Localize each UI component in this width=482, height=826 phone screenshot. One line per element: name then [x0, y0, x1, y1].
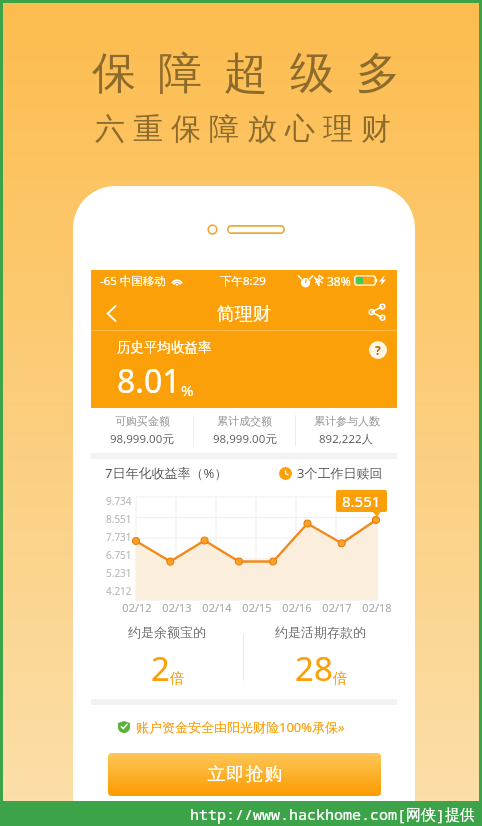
staticText: 累计成交额 — [217, 414, 272, 428]
button[interactable]: 立即抢购 — [108, 753, 381, 796]
staticText: 约是余额宝的 — [128, 624, 206, 640]
staticText: -65 中国移动 — [100, 273, 166, 289]
staticText: 02/18 — [357, 600, 397, 615]
staticText: 02/13 — [157, 600, 197, 615]
staticText: 六重保障放心理财 — [91, 110, 395, 148]
staticText: 累计参与人数 — [314, 414, 380, 428]
staticText: 立即抢购 — [207, 763, 283, 786]
staticText: ? — [375, 342, 381, 358]
staticText: 7.731 — [106, 530, 132, 544]
staticText: 9.734 — [106, 494, 132, 508]
staticText: 8.01 — [117, 359, 181, 403]
staticText: 98,999.00元 — [213, 431, 277, 447]
staticText: 账户资金安全由阳光财险100%承保» — [136, 718, 345, 736]
staticText: 2 — [151, 646, 170, 691]
staticText: 28 — [295, 646, 333, 691]
staticText: 3个工作日赎回 — [297, 464, 383, 482]
staticText: % — [181, 380, 194, 400]
staticText: http://www.hackhome.com[网侠]提供 — [190, 804, 476, 824]
staticText: 5.231 — [106, 566, 132, 580]
staticText: 38% — [327, 273, 351, 289]
staticText: 简理财 — [217, 303, 271, 326]
staticText: 倍 — [333, 670, 347, 688]
staticText: 下午8:29 — [220, 273, 266, 289]
staticText: 保障超级多 — [81, 46, 411, 101]
staticText: 02/14 — [197, 600, 237, 615]
staticText: 02/15 — [237, 600, 277, 615]
staticText: 约是活期存款的 — [275, 624, 366, 640]
staticText: 7日年化收益率（%） — [105, 464, 228, 482]
staticText: 历史平均收益率 — [117, 339, 212, 356]
staticText: 892,222人 — [319, 431, 374, 447]
staticText: 02/16 — [277, 600, 317, 615]
staticText: 8.551 — [342, 491, 381, 511]
button[interactable]: 账户资金安全由阳光财险100%承保» — [91, 705, 397, 748]
staticText: 6.751 — [106, 548, 132, 562]
button[interactable]: Share — [357, 292, 397, 332]
button[interactable]: Back — [91, 293, 131, 333]
staticText: 8.551 — [106, 512, 132, 526]
button[interactable]: Help — [368, 340, 388, 360]
staticText: 02/17 — [317, 600, 357, 615]
staticText: 4.212 — [106, 584, 132, 598]
staticText: 倍 — [170, 670, 184, 688]
staticText: 可购买金额 — [115, 414, 170, 428]
staticText: 98,999.00元 — [110, 431, 174, 447]
staticText: 02/12 — [117, 600, 157, 615]
